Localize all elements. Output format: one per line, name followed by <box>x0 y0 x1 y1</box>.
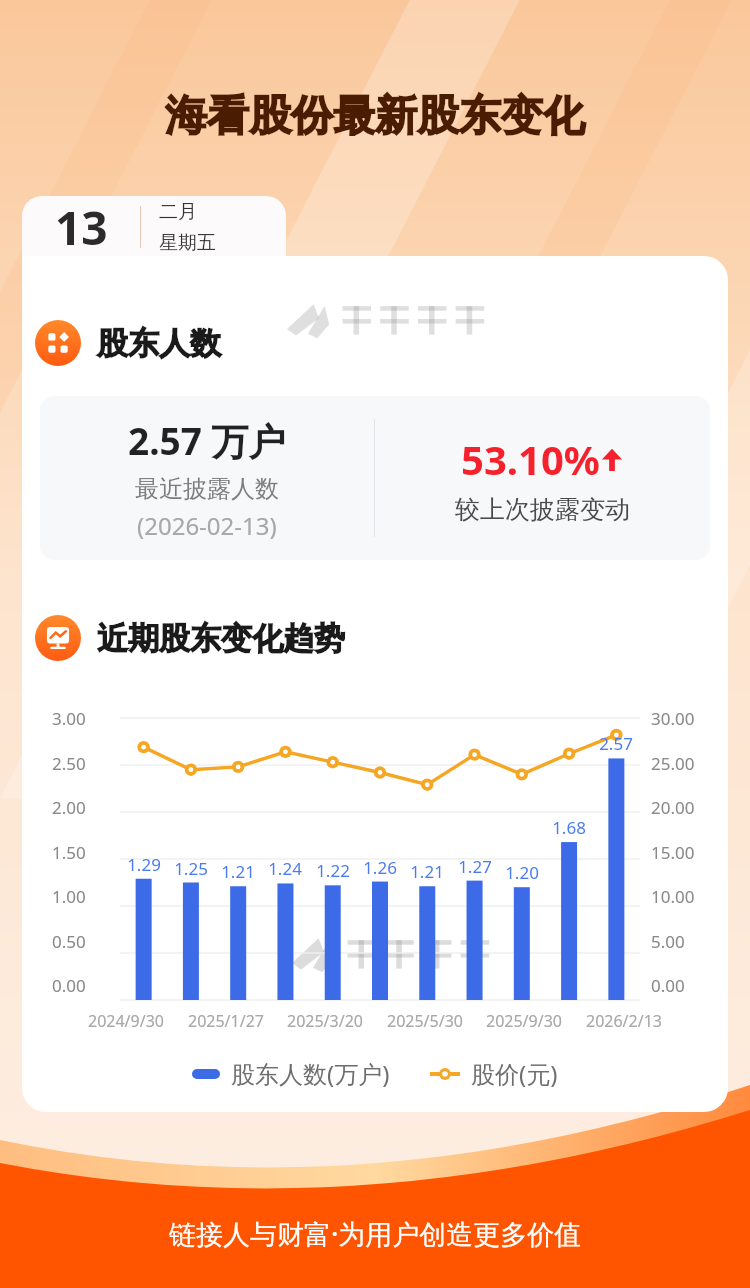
staticText: 链接人与财富·为用户创造更多价值 <box>169 1215 582 1252</box>
staticText: (2026-02-13) <box>137 509 277 542</box>
staticText: 2025/1/27 <box>188 1010 264 1032</box>
staticText: 1.29 <box>127 853 161 876</box>
staticText: 1.00 <box>52 885 86 908</box>
staticText: 3.00 <box>52 707 86 730</box>
staticText: 2.57 <box>599 732 633 755</box>
staticText: 2025/5/30 <box>387 1010 463 1032</box>
staticText: 53.10% <box>461 432 600 486</box>
staticText: 2.00 <box>52 796 86 819</box>
staticText: 较上次披露变动 <box>455 494 630 525</box>
staticText: 股东人数(万户) <box>231 1057 390 1090</box>
staticText: 1.27 <box>458 855 492 878</box>
staticText: 海看股份最新股东变化 <box>165 90 585 143</box>
staticText: 股价(元) <box>471 1057 558 1090</box>
staticText: 0.00 <box>651 974 685 997</box>
staticText: 1.50 <box>52 841 86 864</box>
staticText: 30.00 <box>651 707 695 730</box>
staticText: 2025/3/20 <box>287 1010 363 1032</box>
staticText: 25.00 <box>651 752 695 775</box>
button[interactable]: 股东人数(万户) <box>188 1053 394 1094</box>
button[interactable]: 股价(元) <box>426 1053 562 1094</box>
button[interactable]: 近期股东变化趋势 <box>33 613 347 663</box>
staticText: 二月 <box>159 200 197 224</box>
staticText: 20.00 <box>651 796 695 819</box>
staticText: 1.26 <box>363 856 397 879</box>
staticText: 1.24 <box>268 857 302 880</box>
staticText: 2.50 <box>52 752 86 775</box>
staticText: 1.25 <box>174 857 208 880</box>
staticText: 0.50 <box>52 930 86 953</box>
staticText: 1.22 <box>316 859 350 882</box>
staticText: 1.21 <box>410 860 444 883</box>
staticText: 2025/9/30 <box>486 1010 562 1032</box>
button[interactable]: 股东人数 <box>33 318 223 368</box>
staticText: 10.00 <box>651 885 695 908</box>
staticText: 2024/9/30 <box>88 1010 164 1032</box>
other: 股东人数 <box>35 320 81 366</box>
staticText: 5.00 <box>651 930 685 953</box>
staticText: 2026/2/13 <box>586 1010 662 1032</box>
staticText: 最近披露人数 <box>135 474 279 504</box>
other: 近期股东变化趋势 <box>35 615 81 661</box>
staticText: 2.57 万户 <box>128 415 286 466</box>
staticText: 1.21 <box>221 860 255 883</box>
staticText: 股东人数 <box>97 324 221 363</box>
staticText: 0.00 <box>52 974 86 997</box>
staticText: 1.68 <box>552 816 586 839</box>
staticText: 近期股东变化趋势 <box>97 619 345 658</box>
staticText: 星期五 <box>159 231 216 255</box>
staticText: 13 <box>55 196 108 258</box>
button[interactable]: 2.57 万户 <box>40 396 710 560</box>
staticText: 1.20 <box>505 861 539 884</box>
staticText: 15.00 <box>651 841 695 864</box>
